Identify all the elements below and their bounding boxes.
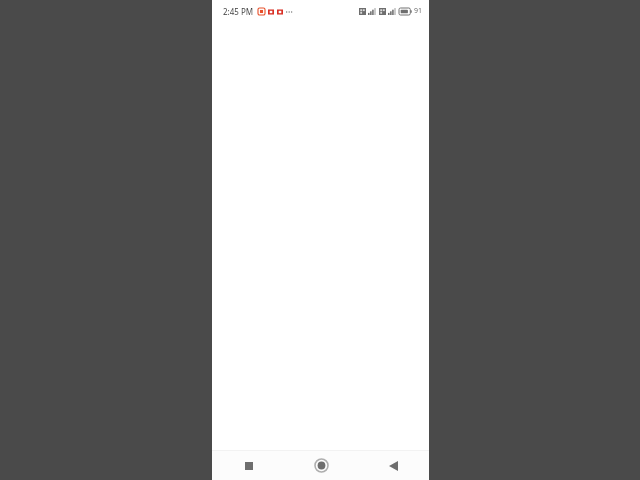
staticText: 2:45 PM bbox=[223, 6, 254, 17]
button[interactable]: Back bbox=[357, 451, 429, 480]
button[interactable]: Home bbox=[285, 451, 357, 480]
button[interactable]: Recent apps bbox=[212, 451, 285, 480]
staticText: 91 bbox=[414, 6, 423, 16]
